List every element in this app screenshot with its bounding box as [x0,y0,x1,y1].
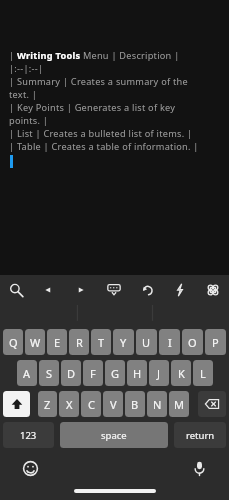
staticText: C [88,397,95,412]
staticText: Y [120,335,127,350]
staticText: A [23,366,31,381]
staticText: points. | [9,114,49,127]
staticText: E [54,335,61,350]
staticText: N [153,397,162,412]
staticText: X [66,397,73,412]
button[interactable]: X [59,391,79,417]
staticText: |:--|:--| [9,62,44,75]
staticText: Q [9,335,18,350]
button[interactable]: Next [64,275,97,305]
button[interactable]: R [69,329,89,355]
button[interactable]: space [60,422,168,448]
button[interactable]: return [174,422,226,448]
button[interactable]: Search [0,275,32,305]
button[interactable]: V [103,391,123,417]
staticText: O [188,335,197,350]
staticText: | Table | Creates a table of information… [9,140,199,153]
staticText: R [76,335,83,350]
button[interactable]: Emoji keyboard [19,457,41,479]
staticText: P [212,335,219,350]
button[interactable]: A [17,360,37,386]
button[interactable]: O [182,329,203,355]
button[interactable]: H [127,360,147,386]
staticText: W [30,335,41,350]
staticText: T [98,335,105,350]
staticText: G [111,366,120,381]
staticText: S [46,366,53,381]
button[interactable]: L [193,360,213,386]
staticText: V [110,397,117,412]
staticText: U [142,335,151,350]
staticText: text. | [9,88,38,101]
staticText: return [186,429,215,442]
button[interactable]: T [91,329,111,355]
button[interactable]: P [205,329,226,355]
button[interactable]: Shift [3,391,30,417]
button[interactable]: 123 [3,422,54,448]
staticText: H [133,366,142,381]
staticText: D [67,366,76,381]
staticText: Z [44,397,51,412]
button[interactable]: J [149,360,169,386]
staticText: | Key Points | Generates a list of key [9,101,176,114]
staticText: M [174,397,184,412]
button[interactable]: U [136,329,157,355]
button[interactable]: Dictation [188,457,210,479]
button[interactable]: I [159,329,180,355]
button[interactable]: N [147,391,167,417]
button[interactable]: Backspace [198,391,226,417]
staticText: J [157,366,161,381]
button[interactable]: M [169,391,189,417]
button[interactable]: E [47,329,67,355]
button[interactable]: Quick actions [163,275,196,305]
button[interactable]: Z [38,391,57,417]
button[interactable]: K [171,360,191,386]
staticText: B [131,397,139,412]
staticText: | List | Creates a bulleted list of item… [9,127,193,140]
button[interactable]: Q [3,329,23,355]
staticText: I [168,335,172,350]
button[interactable]: Command [196,275,229,305]
button[interactable]: G [105,360,125,386]
button[interactable]: W [25,329,45,355]
staticText: K [178,366,185,381]
staticText: space [101,429,127,442]
staticText: 123 [20,429,37,442]
button[interactable]: B [125,391,145,417]
button[interactable]: F [83,360,103,386]
button[interactable]: S [39,360,59,386]
button[interactable]: D [61,360,81,386]
button[interactable]: Undo [130,275,163,305]
button[interactable]: Previous [32,275,64,305]
staticText: F [90,366,96,381]
staticText: L [200,366,206,381]
staticText: | Writing Tools Menu | Description | [9,49,180,62]
staticText: | Summary | Creates a summary of the [9,75,188,88]
button[interactable]: Hide keyboard [97,275,130,305]
button[interactable]: C [81,391,101,417]
button[interactable]: Y [113,329,134,355]
